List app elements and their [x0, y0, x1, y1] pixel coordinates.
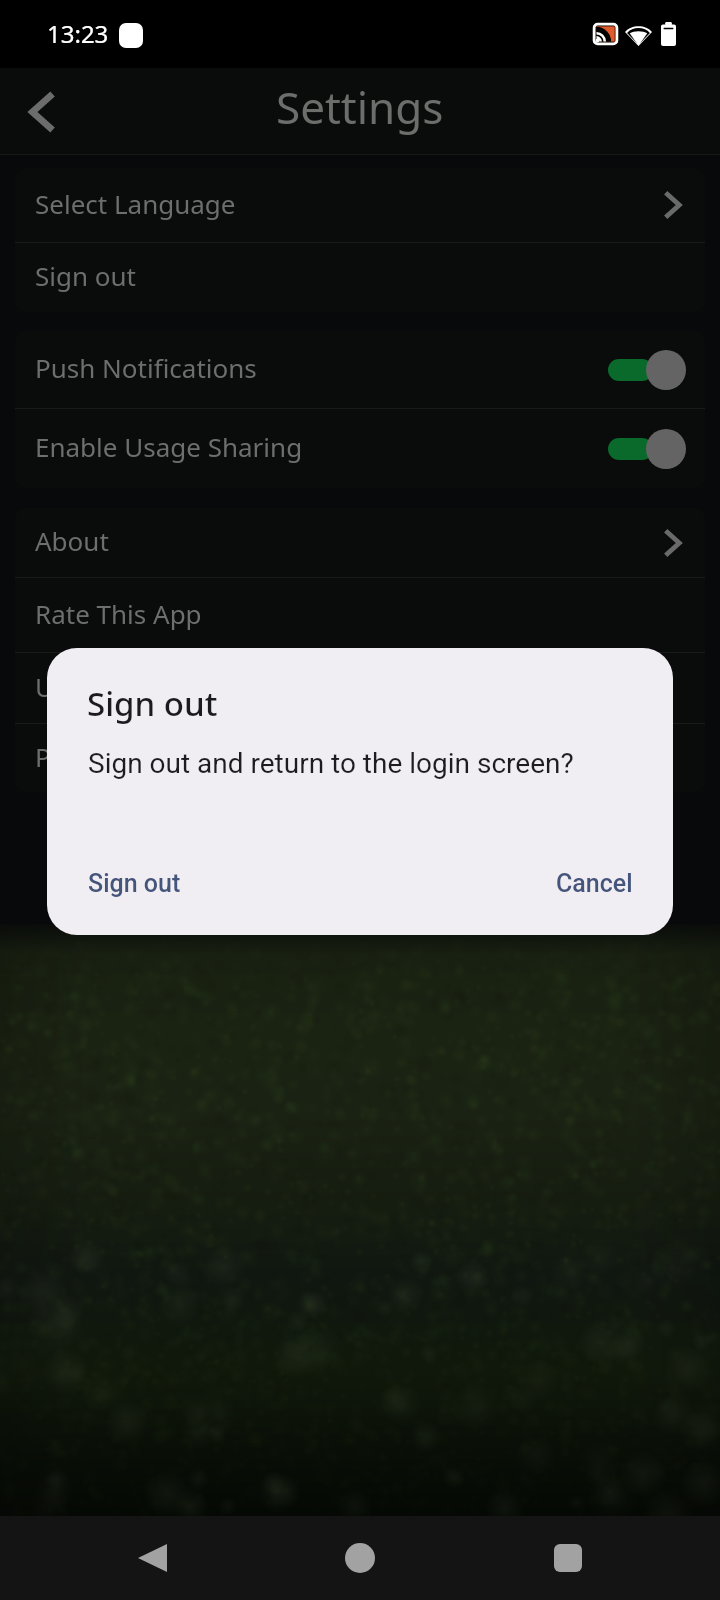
button[interactable]: Push Notifications [15, 330, 705, 408]
staticText: Sign out [35, 258, 136, 293]
staticText: Sign out [87, 681, 218, 726]
staticText: 13:23 [47, 17, 109, 50]
button[interactable]: Back [12, 82, 72, 142]
button[interactable]: Toggle Push Notifications [608, 349, 686, 390]
button[interactable]: Rate This App [15, 578, 705, 652]
button[interactable]: Enable Usage Sharing [15, 409, 705, 488]
staticText: Push Notifications [35, 350, 257, 385]
staticText: Enable Usage Sharing [35, 429, 303, 464]
staticText: Sign out and return to the login screen? [88, 747, 574, 780]
button[interactable]: Recents [526, 1516, 610, 1600]
button[interactable]: About [15, 508, 705, 577]
button[interactable]: Back [110, 1516, 194, 1600]
staticText: Privacy Policy [35, 739, 200, 774]
button[interactable]: Sign out [15, 243, 705, 312]
staticText: Select Language [35, 186, 236, 221]
staticText: Cancel [556, 869, 633, 898]
staticText: Rate This App [35, 596, 202, 631]
staticText: Settings [276, 77, 444, 137]
button[interactable]: Sign out [72, 857, 197, 910]
button[interactable]: Home [318, 1516, 402, 1600]
button[interactable]: Select Language [15, 168, 705, 242]
staticText: About [35, 523, 109, 558]
staticText: User Agreement [35, 669, 236, 704]
button[interactable]: Cancel [540, 857, 649, 910]
button[interactable]: Toggle Enable Usage Sharing [608, 428, 686, 469]
button[interactable]: User Agreement [15, 653, 705, 723]
button[interactable]: Privacy Policy [15, 724, 705, 792]
staticText: Sign out [88, 869, 181, 898]
